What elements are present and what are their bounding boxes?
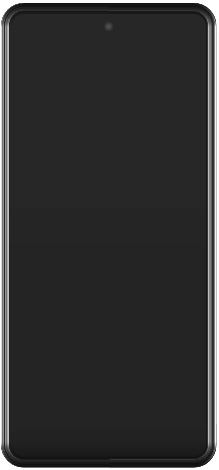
button[interactable]: Smartphone front view [0, 0, 219, 470]
